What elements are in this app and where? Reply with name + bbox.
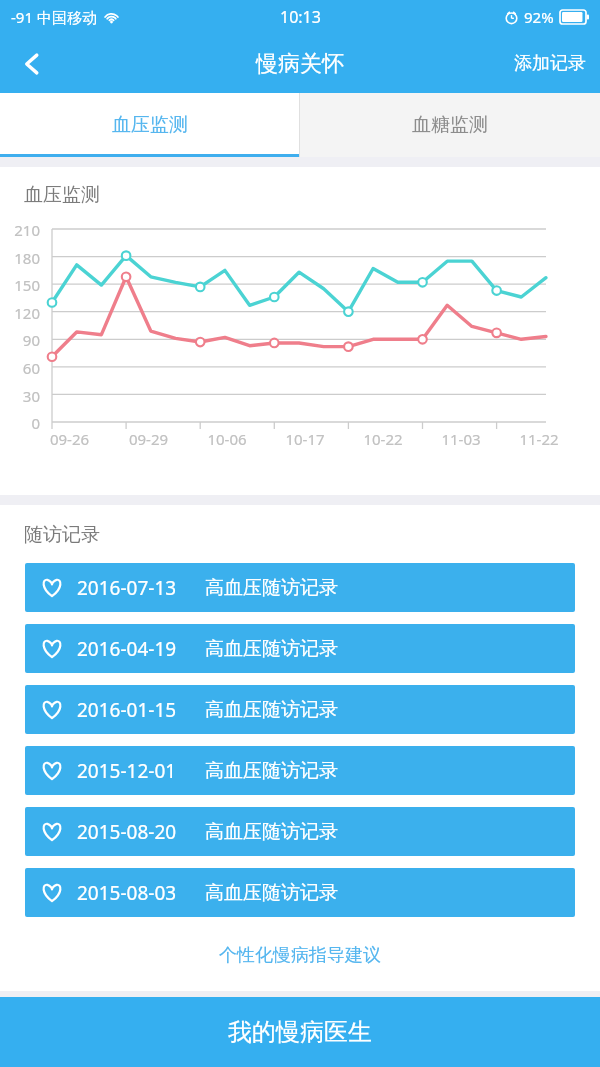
staticText: 血压监测 <box>112 113 188 137</box>
button[interactable]: 血糖监测 <box>300 93 600 157</box>
staticText: 添加记录 <box>514 52 586 75</box>
staticText: 2015-08-03 <box>77 880 177 906</box>
staticText: 11-03 <box>422 429 500 449</box>
staticText: 09-29 <box>109 429 188 449</box>
button[interactable]: 个性化慢病指导建议 <box>0 939 600 972</box>
staticText: 高血压随访记录 <box>205 820 338 844</box>
staticText: 高血压随访记录 <box>205 576 338 600</box>
staticText: 60 <box>0 358 40 378</box>
staticText: 高血压随访记录 <box>205 881 338 905</box>
staticText: 高血压随访记录 <box>205 637 338 661</box>
staticText: 2016-07-13 <box>77 575 177 601</box>
staticText: 10:13 <box>280 6 321 28</box>
staticText: 2016-01-15 <box>77 697 177 723</box>
button[interactable]: 2016-07-13 <box>25 563 575 612</box>
button[interactable]: 2015-08-20 <box>25 807 575 856</box>
button[interactable]: 2016-04-19 <box>25 624 575 673</box>
button[interactable]: 2015-12-01 <box>25 746 575 795</box>
staticText: 11-22 <box>500 429 578 449</box>
staticText: 2015-12-01 <box>77 758 177 784</box>
staticText: 2015-08-20 <box>77 819 177 845</box>
staticText: 150 <box>0 275 40 295</box>
staticText: 慢病关怀 <box>256 50 344 78</box>
staticText: 90 <box>0 330 40 350</box>
staticText: 30 <box>0 386 40 406</box>
button[interactable]: 血压监测 <box>0 93 299 157</box>
staticText: 2016-04-19 <box>77 636 177 662</box>
staticText: 0 <box>0 413 40 433</box>
staticText: 血糖监测 <box>412 113 488 137</box>
button[interactable]: 2016-01-15 <box>25 685 575 734</box>
staticText: 120 <box>0 303 40 323</box>
staticText: 210 <box>0 220 40 240</box>
staticText: 10-22 <box>344 429 422 449</box>
staticText: -91 中国移动 <box>11 7 97 27</box>
staticText: 高血压随访记录 <box>205 759 338 783</box>
staticText: 10-06 <box>188 429 266 449</box>
staticText: 高血压随访记录 <box>205 698 338 722</box>
button[interactable]: 我的慢病医生 <box>0 997 600 1067</box>
staticText: 随访记录 <box>24 523 100 547</box>
staticText: 09-26 <box>30 429 109 449</box>
button[interactable]: 添加记录 <box>500 34 600 93</box>
button[interactable]: 2015-08-03 <box>25 868 575 917</box>
staticText: 180 <box>0 248 40 268</box>
staticText: 92% <box>524 7 554 27</box>
staticText: 我的慢病医生 <box>228 1017 372 1047</box>
staticText: 10-17 <box>266 429 344 449</box>
staticText: 个性化慢病指导建议 <box>219 944 381 967</box>
staticText: 血压监测 <box>24 183 100 207</box>
button[interactable]: Back <box>0 34 64 93</box>
